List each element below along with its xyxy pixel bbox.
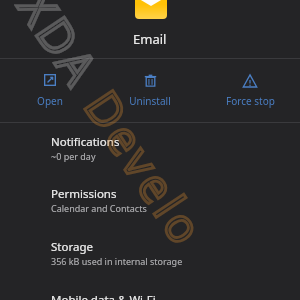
staticText: Email — [133, 30, 167, 48]
staticText: ~0 per day — [51, 150, 96, 162]
staticText: Open — [37, 94, 63, 108]
button[interactable]: Mobile data & Wi-Fi — [0, 281, 300, 300]
button[interactable]: Force stop — [200, 59, 300, 122]
button[interactable]: Permissions — [0, 175, 300, 228]
button[interactable]: Email app icon — [135, 0, 167, 19]
staticText: Permissions — [51, 186, 117, 202]
button[interactable]: Storage — [0, 228, 300, 281]
button[interactable]: Uninstall — [100, 59, 200, 122]
staticText: 356 kB used in internal storage — [51, 255, 183, 267]
staticText: Notifications — [51, 134, 120, 150]
staticText: Developers — [55, 64, 224, 268]
staticText: Uninstall — [129, 94, 171, 108]
staticText: Mobile data & Wi-Fi — [51, 292, 156, 300]
button[interactable]: Open — [0, 59, 100, 122]
staticText: Storage — [51, 239, 93, 255]
staticText: Force stop — [226, 94, 275, 108]
button[interactable]: Notifications — [0, 123, 300, 175]
staticText: Calendar and Contacts — [51, 202, 147, 214]
staticText: XDA — [5, 0, 115, 99]
